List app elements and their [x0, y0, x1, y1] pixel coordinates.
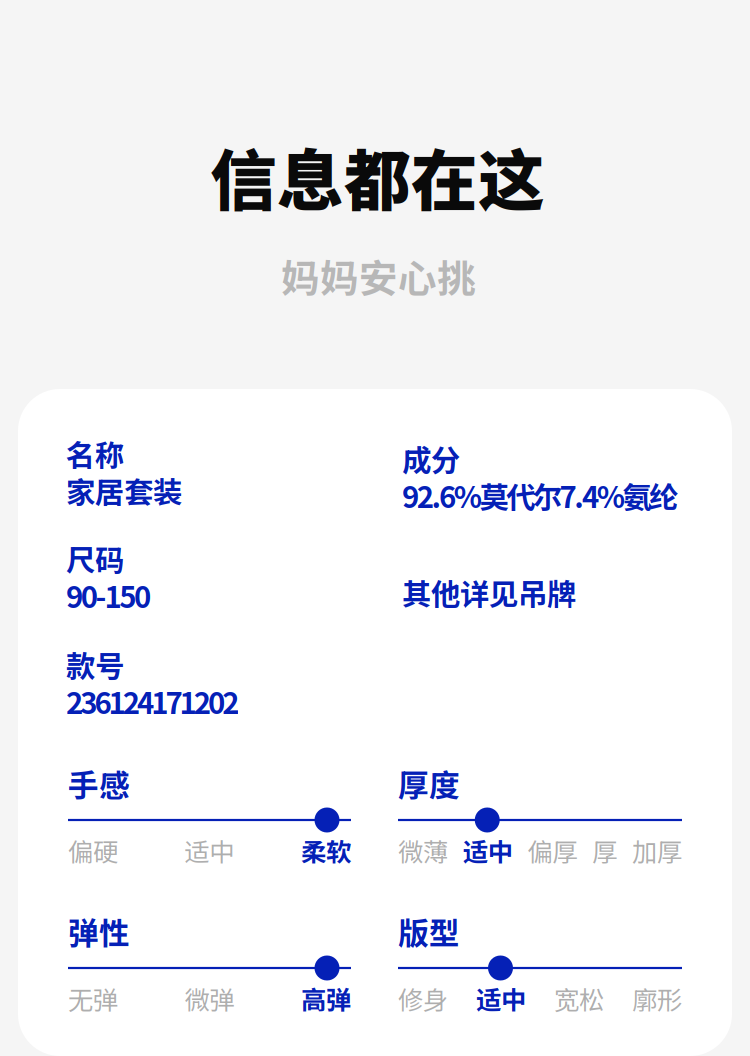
button[interactable]: 微弹	[184, 980, 234, 1017]
staticText: 92.6%莫代尔7.4%氨纶	[402, 474, 678, 516]
staticText: 宽松	[554, 980, 604, 1017]
staticText: 高弹	[301, 980, 351, 1017]
staticText: 柔软	[301, 832, 351, 869]
button[interactable]: 适中	[463, 832, 513, 869]
button[interactable]: 廓形	[632, 980, 682, 1017]
staticText: 手感	[68, 761, 130, 805]
staticText: 廓形	[632, 980, 682, 1017]
staticText: 尺码	[66, 537, 124, 579]
staticText: 236124171202	[66, 680, 239, 722]
staticText: 90-150	[66, 574, 151, 616]
button[interactable]: 厚	[592, 832, 617, 869]
button[interactable]: 宽松	[554, 980, 604, 1017]
staticText: 适中	[476, 980, 526, 1017]
staticText: 厚度	[398, 761, 460, 805]
button[interactable]: 微薄	[398, 832, 448, 869]
staticText: 偏厚	[527, 832, 577, 869]
staticText: 厚	[592, 832, 617, 869]
button[interactable]: 偏硬	[68, 832, 118, 869]
button[interactable]: 无弹	[68, 980, 118, 1017]
button[interactable]: 适中	[476, 980, 526, 1017]
staticText: 款号	[66, 643, 124, 685]
staticText: 加厚	[632, 832, 682, 869]
button[interactable]: 修身	[398, 980, 448, 1017]
button[interactable]: 柔软	[301, 832, 351, 869]
staticText: 微薄	[398, 832, 448, 869]
staticText: 其他详见吊牌	[402, 571, 576, 613]
staticText: 适中	[184, 832, 234, 869]
staticText: 家居套装	[66, 469, 182, 511]
staticText: 成分	[402, 437, 460, 479]
staticText: 修身	[398, 980, 448, 1017]
staticText: 名称	[66, 432, 124, 474]
staticText: 无弹	[68, 980, 118, 1017]
staticText: 偏硬	[68, 832, 118, 869]
staticText: 版型	[398, 909, 460, 953]
staticText: 微弹	[184, 980, 234, 1017]
button[interactable]: 偏厚	[527, 832, 577, 869]
staticText: 信息都在这	[210, 128, 545, 224]
button[interactable]: 适中	[184, 832, 234, 869]
button[interactable]: 加厚	[632, 832, 682, 869]
staticText: 适中	[463, 832, 513, 869]
button[interactable]: 高弹	[301, 980, 351, 1017]
staticText: 妈妈安心挑	[281, 248, 476, 304]
staticText: 弹性	[68, 909, 130, 953]
